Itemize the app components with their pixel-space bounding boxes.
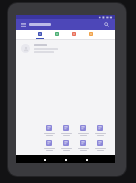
button[interactable]: Share target [58,140,74,151]
button[interactable]: Share target [41,140,57,151]
button[interactable]: Share target [58,125,74,136]
button[interactable]: Share target [75,125,91,136]
button[interactable]: Tab [35,30,45,40]
button[interactable]: Tab [69,30,79,40]
button[interactable]: Home [62,156,69,163]
button[interactable]: Share target [92,125,108,136]
button[interactable]: Recent apps [83,156,90,163]
button[interactable] [29,23,51,26]
button[interactable]: Tab [86,30,96,40]
button[interactable]: Search [102,20,111,29]
button[interactable] [16,40,115,56]
button[interactable]: Share target [41,125,57,136]
button[interactable]: Tab [52,30,62,40]
button[interactable]: Back [41,156,48,163]
button[interactable]: Menu [19,21,27,29]
button[interactable]: Share target [75,140,91,151]
button[interactable]: Share target [92,140,108,151]
